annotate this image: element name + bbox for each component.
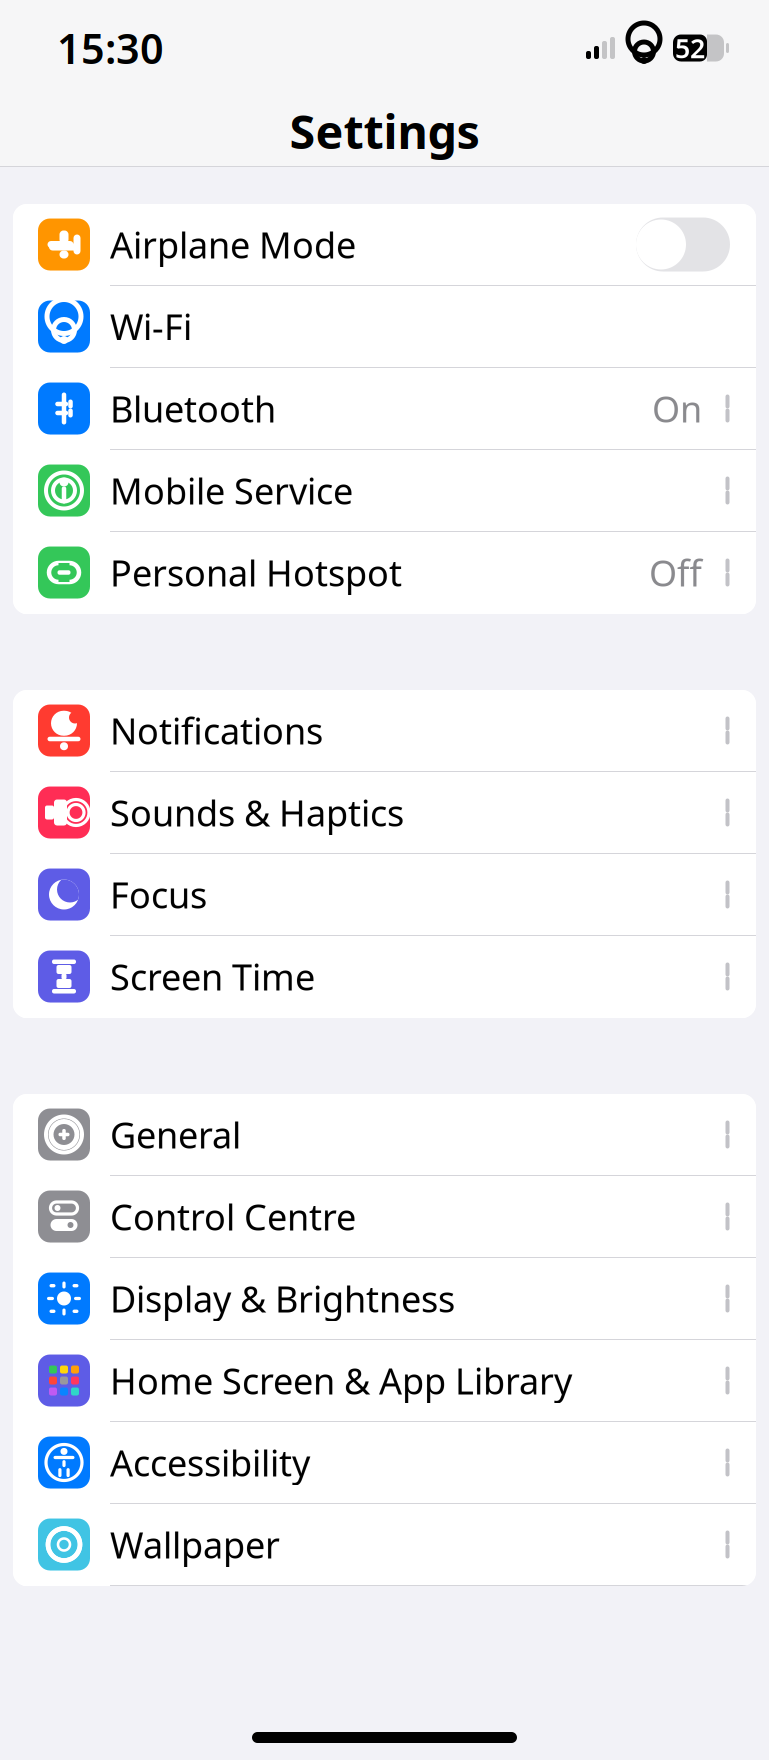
staticText: General <box>110 1111 241 1158</box>
staticText: Control Centre <box>110 1193 356 1240</box>
staticText: Off <box>649 549 702 596</box>
staticText: Bluetooth <box>110 385 276 432</box>
button[interactable]: Notifications <box>13 690 756 772</box>
staticText: Wi-Fi <box>110 303 192 350</box>
staticText: Focus <box>110 871 207 918</box>
staticText: Accessibility <box>110 1439 310 1486</box>
button[interactable]: Wallpaper <box>13 1504 756 1586</box>
button[interactable]: Control Centre <box>13 1176 756 1258</box>
button[interactable]: Accessibility <box>13 1422 756 1504</box>
button[interactable]: Home Screen & App Library <box>13 1340 756 1422</box>
staticText: Screen Time <box>110 953 315 1000</box>
staticText: On <box>652 385 702 432</box>
button[interactable]: General <box>13 1094 756 1176</box>
staticText: Airplane Mode <box>110 221 356 268</box>
button[interactable]: Sounds & Haptics <box>13 772 756 854</box>
staticText: Settings <box>289 100 479 162</box>
staticText: Personal Hotspot <box>110 549 402 596</box>
staticText: Sounds & Haptics <box>110 789 404 836</box>
button[interactable]: Wi-Fi <box>13 286 756 368</box>
button[interactable]: Bluetooth <box>13 368 756 450</box>
button[interactable]: Screen Time <box>13 936 756 1018</box>
staticText: Wallpaper <box>110 1521 280 1568</box>
staticText: Display & Brightness <box>110 1275 455 1322</box>
button[interactable]: Airplane Mode <box>13 204 756 286</box>
staticText: Mobile Service <box>110 467 353 514</box>
staticText: 52 <box>675 30 705 66</box>
staticText: Home Screen & App Library <box>110 1357 572 1404</box>
staticText: 15:30 <box>57 21 164 75</box>
button[interactable]: Focus <box>13 854 756 936</box>
staticText: Notifications <box>110 707 323 754</box>
button[interactable]: Personal Hotspot <box>13 532 756 614</box>
button[interactable]: Display & Brightness <box>13 1258 756 1340</box>
button[interactable]: Mobile Service <box>13 450 756 532</box>
